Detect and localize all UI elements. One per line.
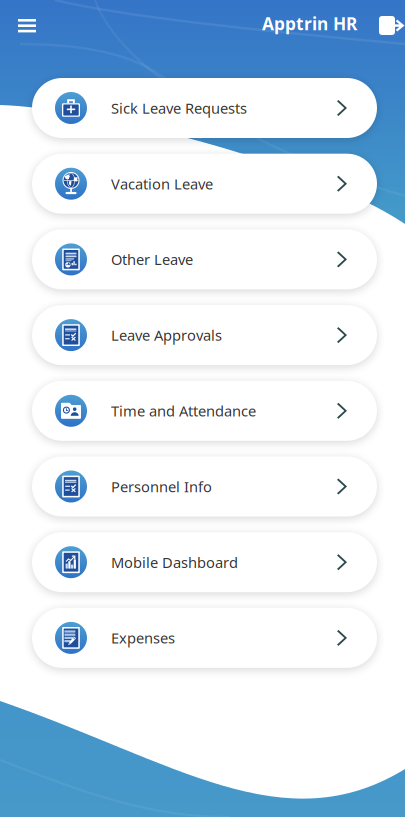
- staticText: Vacation Leave: [111, 174, 213, 193]
- button[interactable]: Mobile Dashboard: [32, 532, 377, 592]
- staticText: Other Leave: [111, 250, 193, 269]
- staticText: Leave Approvals: [111, 325, 222, 345]
- button[interactable]: Time and Attendance: [32, 381, 377, 441]
- button[interactable]: Apptrin HR: [0, 0, 365, 45]
- button[interactable]: Other Leave: [32, 229, 377, 289]
- button[interactable]: Vacation Leave: [32, 154, 377, 214]
- button[interactable]: Expenses: [32, 608, 377, 668]
- staticText: Time and Attendance: [111, 401, 256, 421]
- staticText: Mobile Dashboard: [111, 552, 238, 572]
- staticText: Expenses: [111, 628, 175, 648]
- staticText: Personnel Info: [111, 477, 212, 496]
- button[interactable]: Leave Approvals: [32, 305, 377, 365]
- staticText: Sick Leave Requests: [111, 98, 247, 118]
- button[interactable]: Personnel Info: [32, 456, 377, 516]
- staticText: Apptrin HR: [262, 12, 357, 35]
- button[interactable]: Menu: [0, 0, 50, 46]
- button[interactable]: Log out: [0, 0, 404, 47]
- button[interactable]: Sick Leave Requests: [32, 78, 377, 138]
